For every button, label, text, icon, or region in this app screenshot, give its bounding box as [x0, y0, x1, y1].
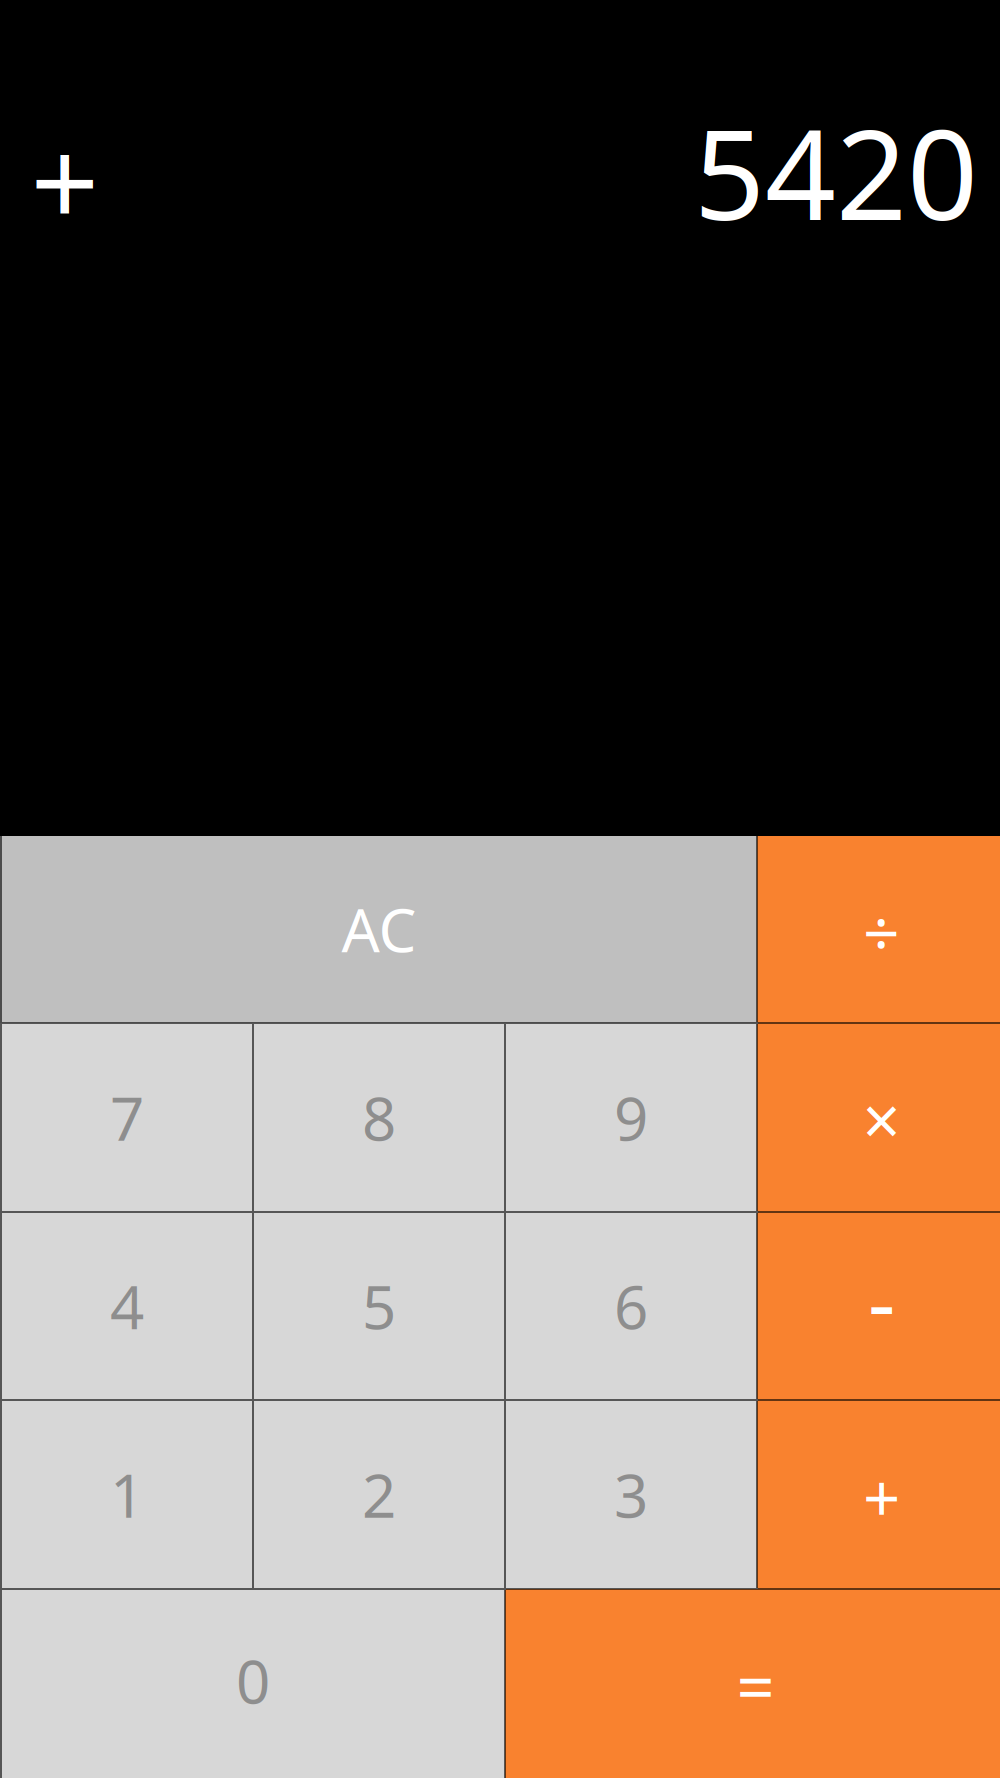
staticText: +	[863, 1453, 900, 1540]
staticText: ÷	[863, 889, 900, 974]
button[interactable]: Divide	[758, 836, 1000, 1022]
staticText: 5	[362, 1266, 396, 1346]
button[interactable]: Multiply	[758, 1024, 1000, 1211]
staticText: 8	[362, 1078, 396, 1157]
button[interactable]: Add	[758, 1401, 1000, 1588]
staticText: +	[30, 100, 99, 260]
button[interactable]: 1	[2, 1401, 252, 1588]
button[interactable]: 5	[254, 1213, 504, 1399]
button[interactable]: 3	[506, 1401, 756, 1588]
staticText: 3	[614, 1455, 648, 1534]
button[interactable]: 0	[2, 1590, 504, 1778]
staticText: 9	[614, 1078, 648, 1157]
button[interactable]: Pending operator, plus	[0, 99, 130, 245]
button[interactable]: 4	[2, 1213, 252, 1399]
staticText: ×	[862, 1075, 900, 1164]
button[interactable]: Subtract	[758, 1213, 1000, 1399]
button[interactable]: 2	[254, 1401, 504, 1588]
button[interactable]: All clear	[2, 836, 756, 1022]
staticText: 1	[110, 1455, 144, 1534]
staticText: 4	[110, 1266, 144, 1346]
button[interactable]: 9	[506, 1024, 756, 1211]
staticText: 7	[110, 1078, 144, 1157]
staticText: 6	[614, 1266, 648, 1346]
staticText: -	[868, 1244, 895, 1357]
button[interactable]: 7	[2, 1024, 252, 1211]
button[interactable]: 6	[506, 1213, 756, 1399]
staticText: =	[736, 1642, 774, 1730]
staticText: 0	[236, 1641, 270, 1720]
button[interactable]: 8	[254, 1024, 504, 1211]
staticText: AC	[341, 889, 416, 969]
staticText: 5420	[694, 90, 978, 254]
button[interactable]: Equals	[506, 1590, 1000, 1778]
staticText: 2	[362, 1455, 396, 1534]
